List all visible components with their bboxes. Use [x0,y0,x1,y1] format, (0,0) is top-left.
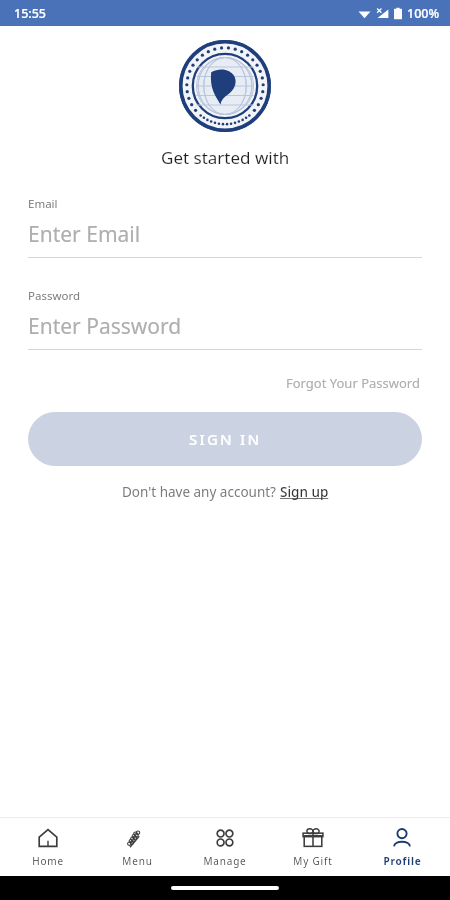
staticText: Enter Password [28,312,182,341]
staticText: My Gift [293,854,333,868]
button[interactable]: Menu [97,827,177,868]
button[interactable]: Sign up [280,483,329,501]
staticText: SIGN IN [189,429,262,449]
staticText: Manage [203,854,247,868]
button[interactable]: Forgot Your Password [284,372,422,394]
staticText: Home [32,854,64,868]
staticText: Enter Email [28,220,141,249]
staticText: 15:55 [14,5,47,22]
staticText: Forgot Your Password [286,374,420,392]
staticText: 100% [407,5,440,22]
staticText: Sign up [280,483,329,501]
button[interactable]: Home [8,827,88,868]
button[interactable]: Email [28,196,422,258]
staticText: Password [28,288,81,304]
staticText: Email [28,196,58,212]
staticText: Get started with [161,146,290,169]
staticText: Menu [122,854,153,868]
button[interactable]: SIGN IN [28,412,422,466]
button[interactable]: My Gift [273,827,353,868]
staticText: Profile [383,854,422,868]
button[interactable]: Password [28,288,422,350]
staticText: Don't have any account? [122,483,280,501]
button[interactable]: Manage [185,827,265,868]
button[interactable]: Profile [362,827,442,868]
